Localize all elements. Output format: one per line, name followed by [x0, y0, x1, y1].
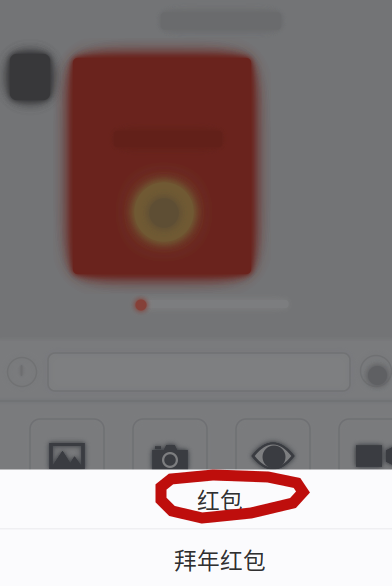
button[interactable]: 红包: [0, 469, 392, 528]
staticText: 红包: [197, 483, 243, 515]
button[interactable]: Emoji: [360, 355, 391, 386]
button[interactable]: 拜年红包: [0, 529, 392, 586]
button[interactable]: Sight: [236, 419, 310, 493]
button[interactable]: Voice message: [7, 357, 36, 386]
button[interactable]: Video call: [339, 419, 392, 493]
button[interactable]: Photos: [30, 419, 104, 493]
button[interactable]: Camera: [133, 419, 207, 493]
staticText: 拜年红包: [174, 543, 266, 575]
